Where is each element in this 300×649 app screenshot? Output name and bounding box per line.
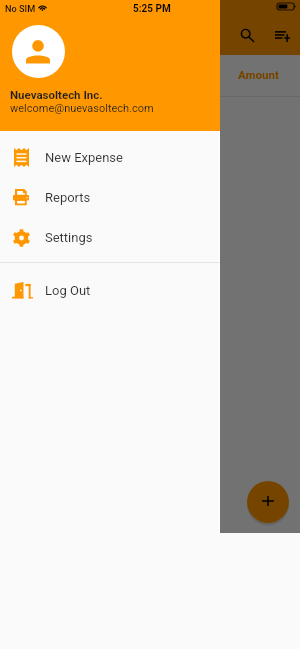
button[interactable]: Add expense	[247, 481, 289, 523]
button[interactable]: Search	[235, 23, 260, 48]
staticText: Amount	[238, 68, 279, 81]
staticText: welcome@nuevasoltech.com	[10, 102, 154, 115]
staticText: Settings	[45, 230, 93, 245]
button[interactable]: Settings	[0, 217, 220, 257]
staticText: New Expense	[45, 150, 123, 165]
button[interactable]: Reports	[0, 177, 220, 217]
staticText: No SIM	[5, 3, 36, 14]
staticText: Date	[14, 68, 38, 81]
staticText: Reports	[45, 190, 91, 205]
button[interactable]: Sort list	[269, 23, 295, 49]
staticText: Nuevasoltech Inc.	[10, 88, 103, 101]
button[interactable]: New Expense	[0, 137, 220, 177]
staticText: Log Out	[45, 283, 91, 298]
button[interactable]: Log Out	[0, 270, 220, 310]
staticText: 5:25 PM	[133, 3, 171, 15]
